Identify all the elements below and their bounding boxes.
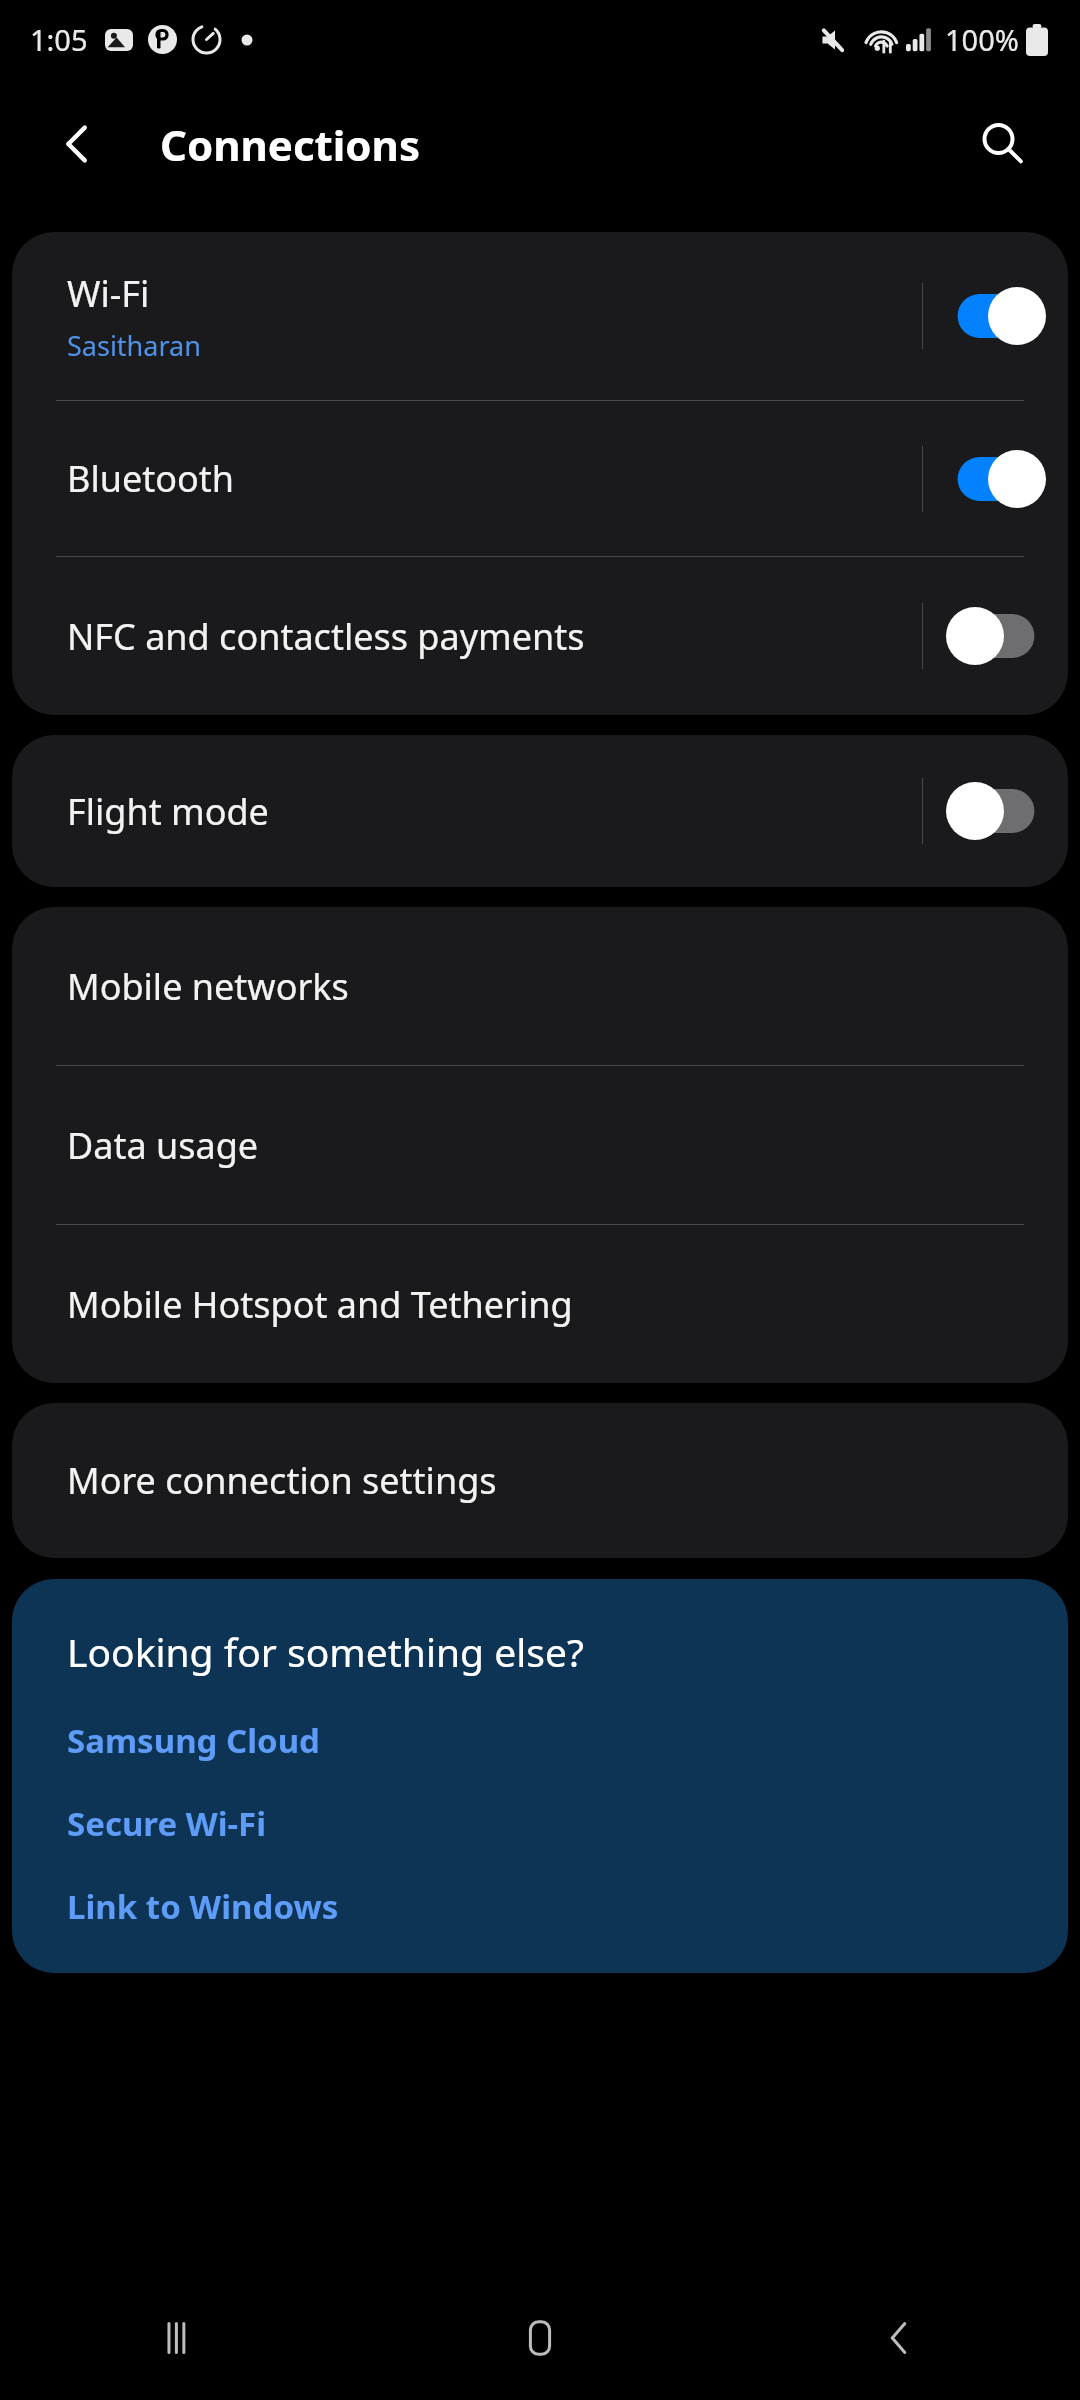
button[interactable]: Data usage bbox=[12, 1066, 1068, 1224]
staticText: Mobile Hotspot and Tethering bbox=[67, 1280, 573, 1329]
staticText: 1:05 bbox=[30, 20, 88, 59]
button[interactable]: Mobile Hotspot and Tethering bbox=[12, 1225, 1068, 1383]
staticText: Data usage bbox=[67, 1121, 259, 1170]
button[interactable]: Bluetooth bbox=[12, 401, 922, 556]
button[interactable]: Secure Wi-Fi bbox=[12, 1801, 1068, 1846]
button[interactable]: NFC and contactless payments switch bbox=[923, 557, 1068, 715]
staticText: Looking for something else? bbox=[67, 1625, 584, 1678]
staticText: Sasitharan bbox=[67, 327, 201, 364]
button[interactable]: Wi-Fi bbox=[12, 232, 922, 400]
button[interactable]: Search bbox=[962, 104, 1042, 184]
button[interactable]: Mobile networks bbox=[12, 907, 1068, 1065]
button[interactable]: Recent apps bbox=[0, 2276, 360, 2400]
staticText: Flight mode bbox=[67, 787, 269, 836]
staticText: Wi-Fi bbox=[67, 269, 150, 318]
button[interactable]: More connection settings bbox=[12, 1403, 1068, 1558]
staticText: 100% bbox=[945, 20, 1019, 59]
staticText: More connection settings bbox=[67, 1456, 497, 1505]
button[interactable]: Home bbox=[360, 2276, 720, 2400]
staticText: Samsung Cloud bbox=[67, 1718, 320, 1763]
staticText: Secure Wi-Fi bbox=[67, 1801, 267, 1846]
button[interactable]: Wi-Fi switch bbox=[923, 232, 1068, 400]
staticText: Bluetooth bbox=[67, 454, 235, 503]
staticText: Connections bbox=[160, 116, 420, 173]
button[interactable]: Flight mode switch bbox=[923, 735, 1068, 887]
button[interactable]: Bluetooth switch bbox=[923, 401, 1068, 556]
staticText: Mobile networks bbox=[67, 962, 349, 1011]
button[interactable]: NFC and contactless payments bbox=[12, 557, 922, 715]
staticText: NFC and contactless payments bbox=[67, 612, 585, 661]
button[interactable]: Flight mode bbox=[12, 735, 922, 887]
staticText: Link to Windows bbox=[67, 1884, 339, 1929]
button[interactable]: Back bbox=[720, 2276, 1080, 2400]
button[interactable]: Samsung Cloud bbox=[12, 1718, 1068, 1763]
button[interactable]: Back bbox=[38, 104, 118, 184]
button[interactable]: Link to Windows bbox=[12, 1884, 1068, 1929]
